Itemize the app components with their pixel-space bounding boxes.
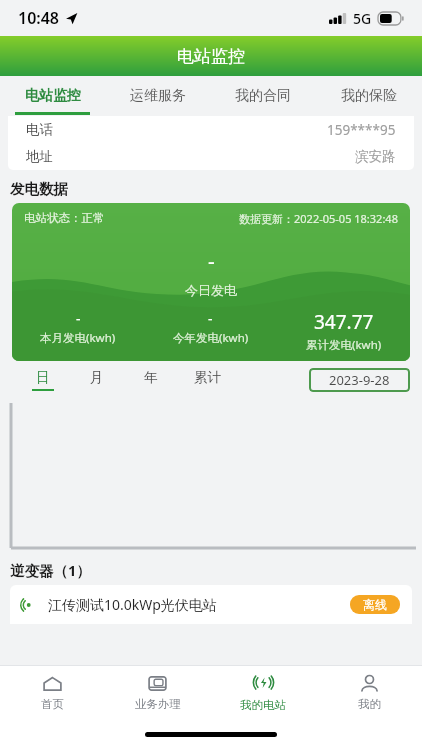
staticText: 今日发电 <box>185 282 237 298</box>
staticText: 滨安路 <box>355 148 396 165</box>
staticText: 159****95 <box>327 121 396 139</box>
staticText: 我的合同 <box>235 87 291 105</box>
button[interactable]: 业务办理 <box>105 666 210 718</box>
staticText: 5G <box>353 9 372 28</box>
staticText: 电站监控 <box>25 87 81 105</box>
staticText: 离线 <box>363 597 387 612</box>
staticText: 电话 <box>26 121 53 138</box>
staticText: 电站状态：正常 <box>24 211 105 225</box>
staticText: 首页 <box>41 697 64 711</box>
staticText: 年 <box>144 369 158 386</box>
staticText: 我的 <box>358 697 381 711</box>
staticText: 电站监控 <box>177 46 245 67</box>
staticText: 逆变器（1） <box>10 560 91 580</box>
staticText: 今年发电(kwh) <box>173 330 249 346</box>
staticText: 地址 <box>26 148 53 165</box>
staticText: 347.77 <box>314 309 374 335</box>
button[interactable]: 累计 <box>184 369 231 391</box>
button[interactable]: 我的电站 <box>210 666 316 718</box>
button[interactable]: 运维服务 <box>105 76 210 116</box>
button[interactable]: 我的合同 <box>210 76 316 116</box>
staticText: 本月发电(kwh) <box>40 330 116 346</box>
staticText: 江传测试10.0kWp光伏电站 <box>48 595 342 614</box>
button[interactable]: 电站监控 <box>0 76 105 116</box>
staticText: 累计发电(kwh) <box>306 337 382 353</box>
staticText: 业务办理 <box>135 697 181 711</box>
staticText: - <box>208 309 213 328</box>
staticText: 数据更新：2022-05-05 18:32:48 <box>239 211 398 226</box>
button[interactable]: 月 <box>76 369 118 391</box>
button[interactable]: 地址 <box>26 143 396 170</box>
staticText: 月 <box>90 369 104 386</box>
button[interactable]: 首页 <box>0 666 105 718</box>
button[interactable]: 2023-9-28 <box>309 368 410 392</box>
staticText: - <box>208 247 215 276</box>
button[interactable]: 信号 <box>10 585 412 624</box>
other: 信号 <box>22 597 38 613</box>
staticText: 日 <box>36 369 50 386</box>
button[interactable]: 日 <box>22 369 64 391</box>
staticText: 10:48 <box>18 7 60 29</box>
button[interactable]: 我的保险 <box>316 76 422 116</box>
staticText: 发电数据 <box>10 180 68 198</box>
button[interactable]: 年 <box>130 369 172 391</box>
staticText: 运维服务 <box>130 87 186 105</box>
button[interactable]: 我的 <box>316 666 422 718</box>
staticText: 累计 <box>194 369 221 386</box>
staticText: - <box>76 309 81 328</box>
staticText: 我的电站 <box>240 698 286 712</box>
button[interactable]: 电话 <box>26 116 396 143</box>
staticText: 我的保险 <box>341 87 397 105</box>
staticText: 2023-9-28 <box>329 371 390 389</box>
